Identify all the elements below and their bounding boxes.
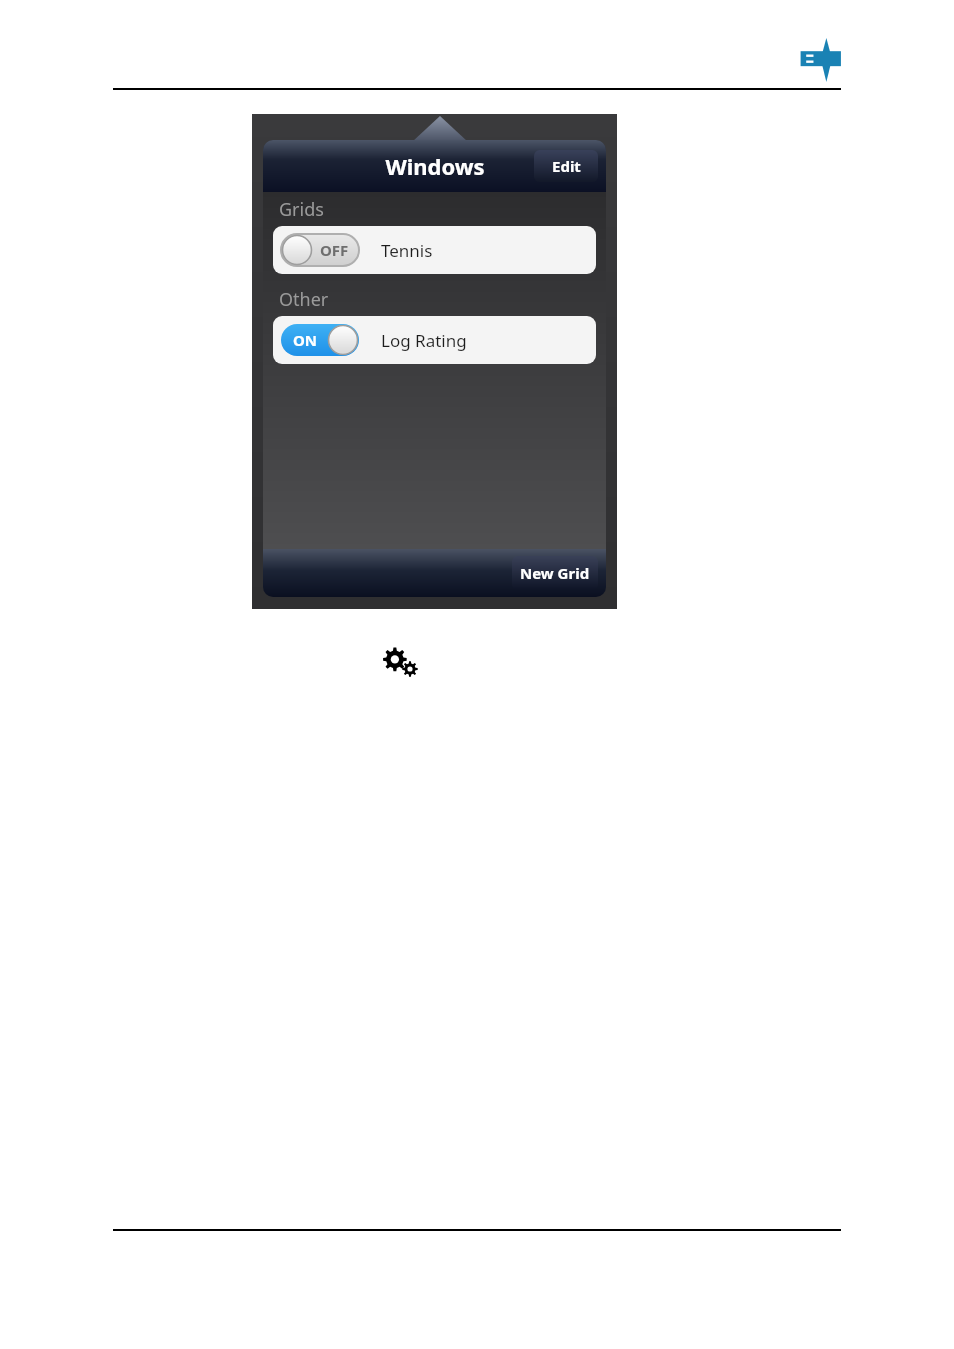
button[interactable]: Switch on bbox=[273, 316, 596, 364]
staticText: Edit bbox=[552, 156, 581, 176]
staticText: Tennis bbox=[381, 239, 433, 262]
staticText: OFF bbox=[320, 240, 349, 260]
other: Settings gears bbox=[383, 648, 419, 678]
button[interactable]: Switch on bbox=[281, 324, 359, 356]
button[interactable]: Switch off bbox=[273, 226, 596, 274]
button[interactable]: New Grid bbox=[512, 556, 598, 590]
other: EVS logo bbox=[795, 38, 851, 82]
staticText: New Grid bbox=[520, 563, 590, 583]
button[interactable]: Edit bbox=[534, 150, 598, 182]
button[interactable]: Switch off bbox=[281, 234, 359, 266]
staticText: Other bbox=[279, 287, 329, 312]
staticText: Grids bbox=[279, 197, 324, 222]
staticText: Log Rating bbox=[381, 329, 467, 352]
staticText: Windows bbox=[385, 151, 485, 181]
staticText: ON bbox=[293, 330, 318, 350]
